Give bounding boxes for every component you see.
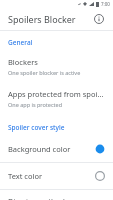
- button[interactable]: Blockers: [0, 51, 113, 83]
- button[interactable]: Dismiss method: [0, 190, 113, 200]
- button[interactable]: Text color: [0, 163, 113, 189]
- staticText: Spoilers Blocker: [8, 13, 90, 25]
- staticText: Spoiler cover style: [8, 123, 65, 132]
- staticText: One app is protected: [8, 101, 63, 108]
- staticText: Blockers: [8, 57, 38, 67]
- staticText: Dismiss method: [8, 196, 65, 200]
- staticText: 7:00: [101, 1, 110, 7]
- button[interactable]: Help: [90, 10, 108, 28]
- button[interactable]: Background color: [0, 136, 113, 162]
- staticText: Apps protected from spoilers: [8, 89, 105, 99]
- staticText: One spoiler blocker is active: [8, 69, 81, 76]
- staticText: Background color: [8, 144, 95, 154]
- staticText: Text color: [8, 171, 95, 181]
- button[interactable]: Apps protected from spoilers: [0, 83, 113, 115]
- staticText: General: [8, 38, 33, 47]
